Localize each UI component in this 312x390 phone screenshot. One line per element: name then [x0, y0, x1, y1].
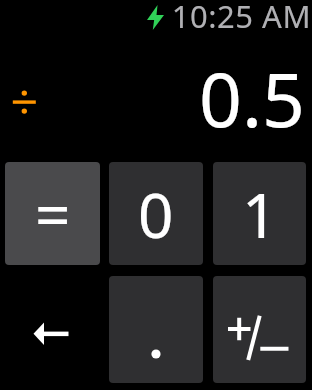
staticText: 10:25 AM [0, 0, 311, 37]
button[interactable]: 1 [213, 162, 306, 265]
staticText: = [35, 172, 71, 256]
button[interactable]: 0 [109, 162, 203, 265]
button[interactable] [5, 276, 100, 383]
staticText: 1 [242, 172, 278, 256]
button[interactable]: = [5, 162, 100, 265]
button[interactable] [213, 276, 306, 383]
staticText: 0.5 [0, 47, 305, 149]
button[interactable] [109, 276, 203, 383]
staticText: 0 [138, 172, 174, 256]
